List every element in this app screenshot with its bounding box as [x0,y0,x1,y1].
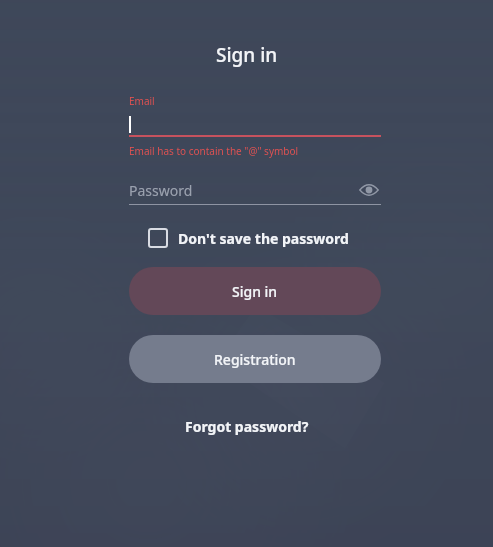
button[interactable]: Forgot password? [177,411,317,442]
button[interactable]: Password [129,178,381,202]
staticText: Email has to contain the "@" symbol [129,144,299,158]
staticText: Sign in [216,42,278,68]
button[interactable]: Show password [357,178,381,202]
button[interactable]: Don't save the password [148,228,349,248]
staticText: Sign in [232,282,278,301]
staticText: Registration [214,350,296,369]
staticText: Password [129,181,193,200]
staticText: Don't save the password [178,229,349,248]
button[interactable]: Registration [129,335,381,383]
button[interactable] [129,113,381,135]
staticText: Email [129,94,155,108]
staticText: Forgot password? [185,417,309,436]
button[interactable]: Sign in [129,267,381,315]
